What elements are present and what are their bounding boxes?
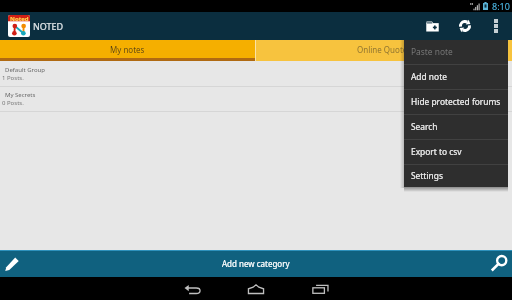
staticText: Search xyxy=(411,121,438,132)
button[interactable]: Hide protected forums xyxy=(404,90,508,114)
staticText: My notes xyxy=(110,44,145,55)
staticText: Online Quotes xyxy=(357,44,412,55)
staticText: Settings xyxy=(411,170,443,181)
button[interactable]: Search xyxy=(486,250,512,277)
staticText: Hide protected forums xyxy=(411,96,501,107)
button[interactable]: Online Quotes xyxy=(256,40,512,61)
button[interactable]: Home xyxy=(224,277,288,300)
button[interactable]: Search xyxy=(404,115,508,139)
button[interactable]: My notes xyxy=(0,40,255,61)
button[interactable]: Recents xyxy=(288,277,352,300)
staticText: Export to csv xyxy=(411,146,462,157)
staticText: 1 Posts. xyxy=(2,74,24,82)
button[interactable]: Add note xyxy=(404,65,508,89)
button[interactable]: Refresh xyxy=(449,12,481,40)
staticText: Default Group xyxy=(5,66,45,74)
button[interactable]: Edit xyxy=(0,250,24,277)
button[interactable]: Default Group xyxy=(0,62,512,87)
staticText: My Secrets xyxy=(5,91,36,99)
staticText: Noted xyxy=(10,15,29,23)
button[interactable]: My Secrets xyxy=(0,87,512,112)
button[interactable]: Back xyxy=(160,277,224,300)
button[interactable]: Paste note xyxy=(404,40,508,64)
button[interactable]: Settings xyxy=(404,165,508,187)
staticText: Add new category xyxy=(222,258,290,269)
staticText: Paste note xyxy=(411,46,453,57)
staticText: 8:10 xyxy=(492,0,510,12)
button[interactable]: More options xyxy=(481,12,511,40)
staticText: Add note xyxy=(411,71,447,82)
button[interactable]: New folder xyxy=(415,12,449,40)
button[interactable]: Export to csv xyxy=(404,140,508,164)
staticText: 0 Posts. xyxy=(2,99,24,107)
staticText: NOTED xyxy=(33,20,64,32)
